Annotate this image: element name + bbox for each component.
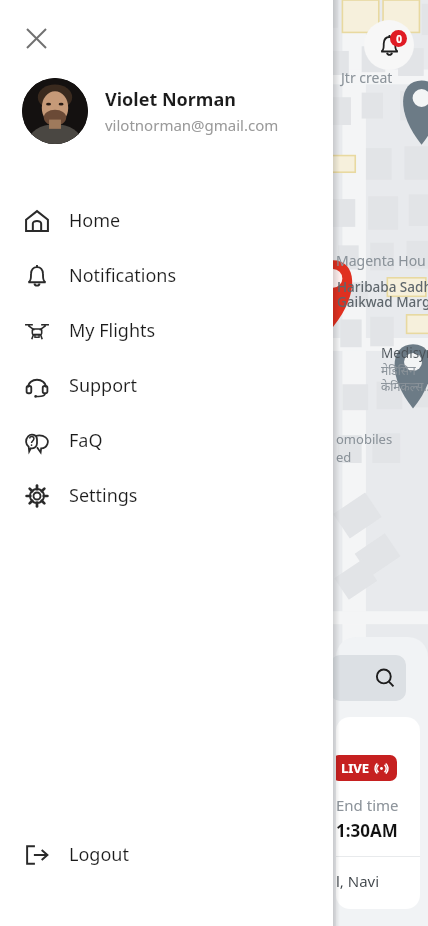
staticText: LIVE	[341, 759, 370, 777]
staticText: Violet Norman	[105, 87, 236, 112]
staticText: Jtr creat	[341, 68, 393, 87]
staticText: Support	[69, 373, 137, 398]
staticText: Gaikwad Marg	[337, 293, 428, 311]
staticText: 1:30AM	[336, 819, 398, 842]
staticText: Notifications	[69, 263, 177, 288]
staticText: My Flights	[69, 318, 156, 343]
button[interactable]: My Flights	[0, 303, 333, 358]
staticText: 0	[396, 32, 402, 46]
button[interactable]: Close	[14, 16, 58, 60]
button[interactable]: LIVE	[336, 717, 420, 909]
staticText: l, Navi	[336, 871, 380, 891]
staticText: Logout	[69, 842, 129, 867]
staticText: मेडिसिन	[381, 362, 416, 378]
staticText: केमिकल्स..	[381, 378, 428, 394]
staticText: omobiles	[336, 430, 393, 448]
button[interactable]: Notifications	[0, 248, 333, 303]
button[interactable]: Search	[330, 655, 406, 701]
staticText: Haribaba Sadh	[337, 278, 428, 296]
button[interactable]: Settings	[0, 468, 333, 523]
staticText: Home	[69, 208, 121, 233]
button[interactable]: Logout	[0, 827, 333, 882]
button[interactable]: Support	[0, 358, 333, 413]
button[interactable]: FaQ	[0, 413, 333, 468]
button[interactable]: Notifications	[364, 20, 414, 70]
button[interactable]: Home	[0, 193, 333, 248]
staticText: vilotnorman@gmail.com	[105, 115, 279, 135]
staticText: End time	[336, 795, 399, 815]
staticText: FaQ	[69, 428, 103, 453]
staticText: ed	[336, 448, 352, 466]
staticText: Settings	[69, 483, 138, 508]
button[interactable]: Violet Norman	[0, 72, 333, 150]
staticText: Magenta Hou	[336, 251, 426, 270]
staticText: Medisyn	[381, 344, 428, 362]
